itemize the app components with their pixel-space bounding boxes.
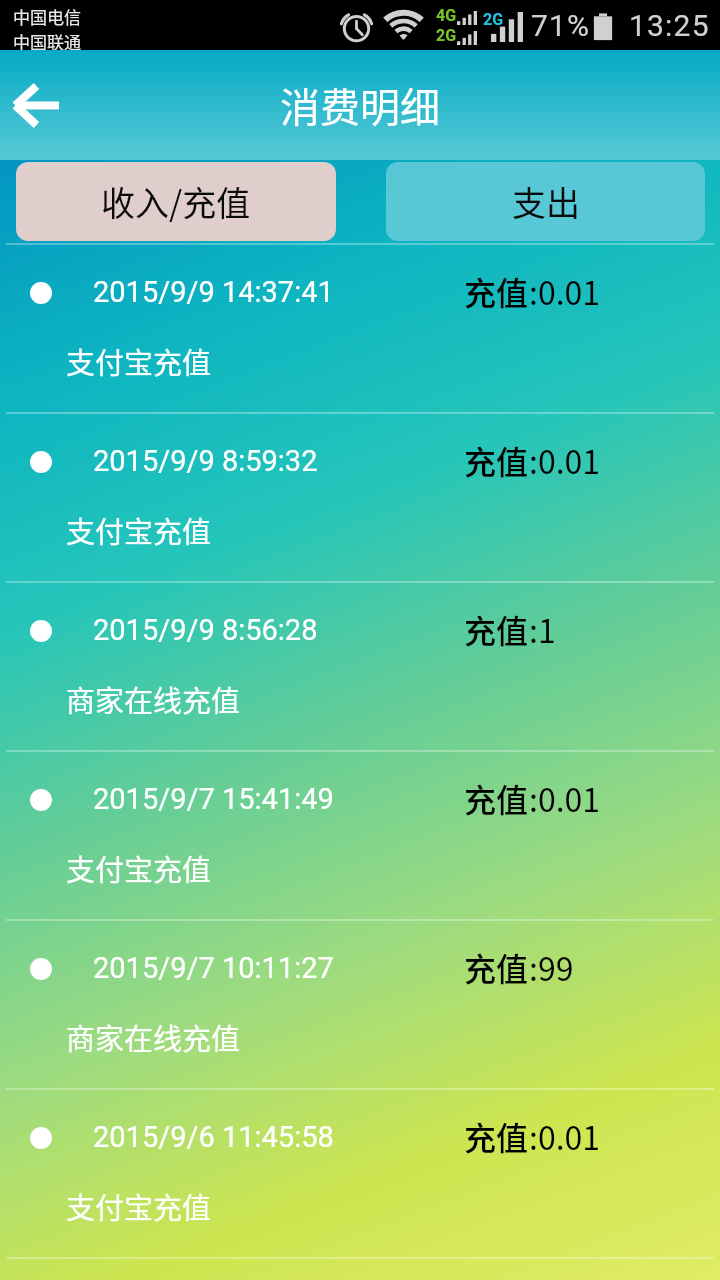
staticText: 充值 [464, 1113, 529, 1159]
staticText: 支出 [512, 177, 580, 226]
button[interactable]: 返回 [0, 65, 72, 145]
staticText: 充值 [464, 944, 529, 990]
staticText: 支付宝充值 [66, 509, 212, 551]
staticText: 2015/9/9 8:59:32 [93, 444, 318, 478]
button[interactable]: 2015/9/9 14:37:41 [0, 245, 720, 412]
staticText: 中国联通 [13, 29, 81, 54]
staticText: 支付宝充值 [66, 1185, 212, 1227]
staticText: 4G [436, 6, 457, 25]
staticText: :0.01 [529, 437, 601, 483]
staticText: 充值 [464, 268, 529, 314]
button[interactable]: 支出 [386, 162, 705, 241]
staticText: 支付宝充值 [66, 340, 212, 382]
staticText: 2015/9/7 10:11:27 [93, 951, 334, 985]
staticText: 2G [436, 26, 457, 45]
button[interactable]: 2015/9/9 8:59:32 [0, 414, 720, 581]
staticText: :99 [529, 944, 574, 990]
staticText: :0.01 [529, 1113, 601, 1159]
staticText: 13:25 [629, 8, 710, 43]
staticText: 商家在线充值 [66, 1016, 241, 1058]
staticText: 充值 [464, 775, 529, 821]
staticText: 收入/充值 [101, 177, 251, 226]
staticText: 2015/9/9 8:56:28 [93, 613, 318, 647]
staticText: 71% [531, 8, 591, 43]
button[interactable]: 收入/充值 [16, 162, 336, 241]
button[interactable]: 2015/9/9 8:56:28 [0, 583, 720, 750]
staticText: :0.01 [529, 775, 601, 821]
staticText: 2G [483, 10, 504, 29]
staticText: 充值 [464, 606, 529, 652]
staticText: 支付宝充值 [66, 847, 212, 889]
button[interactable]: 2015/9/7 15:41:49 [0, 752, 720, 919]
button[interactable]: 2015/9/6 11:45:58 [0, 1090, 720, 1257]
staticText: :0.01 [529, 268, 601, 314]
staticText: 商家在线充值 [66, 678, 241, 720]
button[interactable]: 2015/9/7 10:11:27 [0, 921, 720, 1088]
staticText: 2015/9/9 14:37:41 [93, 275, 334, 309]
staticText: 充值 [464, 437, 529, 483]
staticText: 消费明细 [280, 76, 440, 134]
staticText: :1 [529, 606, 556, 652]
staticText: 2015/9/7 15:41:49 [93, 782, 334, 816]
staticText: 中国电信 [13, 4, 81, 29]
staticText: 2015/9/6 11:45:58 [93, 1120, 334, 1154]
